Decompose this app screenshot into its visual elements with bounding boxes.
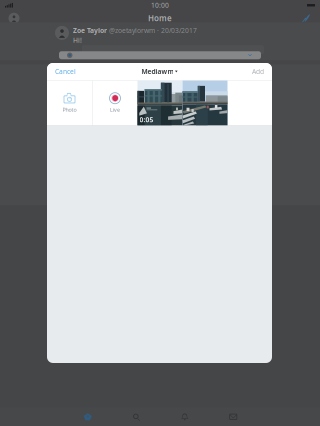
button[interactable]: Mediawm: [138, 64, 181, 79]
staticText: Add: [252, 67, 264, 76]
staticText: Cancel: [55, 67, 76, 76]
staticText: Mediawm: [141, 67, 173, 76]
staticText: Hi!: [73, 36, 82, 45]
button[interactable]: Live: [92, 80, 137, 125]
button[interactable]: Cancel: [51, 63, 80, 80]
staticText: 0:05: [139, 115, 153, 124]
staticText: Live: [110, 106, 120, 113]
staticText: 10:00: [151, 1, 169, 10]
staticText: @zoetaylorwm · 20/03/2017: [109, 26, 197, 35]
button[interactable]: Profile: [6, 11, 22, 26]
button[interactable]: Photo: [47, 80, 92, 125]
button[interactable]: Home: [63, 407, 112, 426]
button[interactable]: Photo: [137, 80, 182, 125]
button[interactable]: Compose: [298, 11, 314, 26]
staticText: Home: [148, 13, 172, 23]
button[interactable]: Photo: [182, 80, 227, 125]
staticText: Photo: [62, 106, 76, 113]
button[interactable]: Add: [248, 63, 268, 80]
staticText: Zoe Taylor: [73, 26, 107, 35]
